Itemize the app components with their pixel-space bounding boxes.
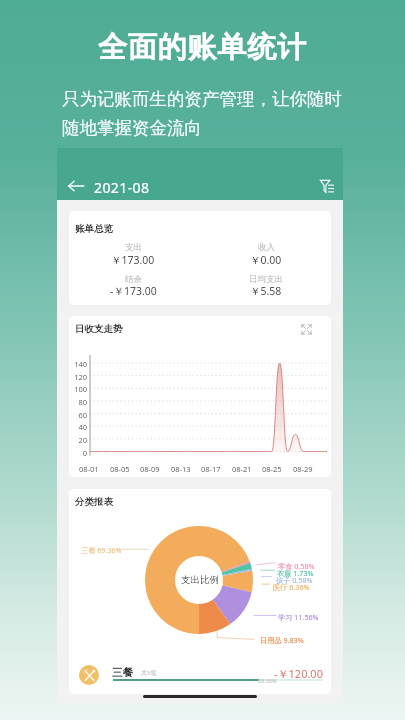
staticText: 08-13	[171, 464, 191, 474]
button[interactable]: 三餐	[69, 654, 331, 694]
staticText: 支出	[125, 242, 142, 253]
staticText: ￥5.58	[250, 284, 282, 298]
staticText: 衣服 1.73%	[277, 568, 314, 578]
staticText: 08-05	[110, 464, 130, 474]
staticText: 三餐	[112, 666, 133, 679]
staticText: 140	[69, 359, 87, 369]
staticText: 共5笔	[141, 669, 157, 677]
staticText: 收入	[258, 242, 275, 253]
staticText: 08-29	[293, 464, 313, 474]
button[interactable]: 账单总览	[69, 211, 331, 305]
staticText: 零食 0.58%	[278, 561, 315, 571]
staticText: 学习 11.56%	[278, 612, 319, 622]
staticText: 结余	[125, 274, 142, 285]
button[interactable]: Back	[64, 174, 88, 198]
staticText: 80	[69, 397, 87, 407]
staticText: 20	[69, 435, 87, 445]
button[interactable]: 分类报表	[69, 489, 331, 694]
staticText: 08-21	[232, 464, 252, 474]
staticText: 100	[69, 384, 87, 394]
staticText: 全面的账单统计	[98, 29, 307, 66]
staticText: 支出比例	[181, 574, 219, 586]
staticText: 三餐 69.36%	[81, 545, 122, 555]
button[interactable]: Filter	[315, 174, 339, 198]
button[interactable]: Fullscreen	[294, 317, 318, 341]
staticText: -￥120.00	[274, 666, 323, 681]
staticText: 0	[69, 448, 87, 458]
staticText: 120	[69, 372, 87, 382]
staticText: 只为记账而生的资产管理，让你随时 随地掌握资金流向	[62, 88, 342, 139]
staticText: 孩子 0.58%	[276, 575, 313, 585]
staticText: ￥173.00	[111, 253, 155, 267]
staticText: 69.36%	[258, 677, 277, 684]
staticText: 08-09	[140, 464, 160, 474]
staticText: 分类报表	[75, 496, 113, 508]
staticText: ￥0.00	[250, 253, 282, 267]
staticText: 日用品 9.83%	[260, 635, 304, 645]
staticText: 日均支出	[249, 274, 283, 285]
staticText: 08-01	[79, 464, 99, 474]
staticText: -￥173.00	[110, 284, 157, 298]
staticText: 2021-08	[94, 178, 150, 197]
staticText: 08-25	[262, 464, 282, 474]
staticText: 医疗 6.36%	[273, 582, 310, 592]
staticText: 60	[69, 410, 87, 420]
staticText: 40	[69, 422, 87, 432]
button[interactable]: 日收支走势	[69, 316, 331, 477]
staticText: 账单总览	[75, 223, 113, 235]
staticText: 08-17	[201, 464, 221, 474]
staticText: 日收支走势	[75, 323, 123, 335]
